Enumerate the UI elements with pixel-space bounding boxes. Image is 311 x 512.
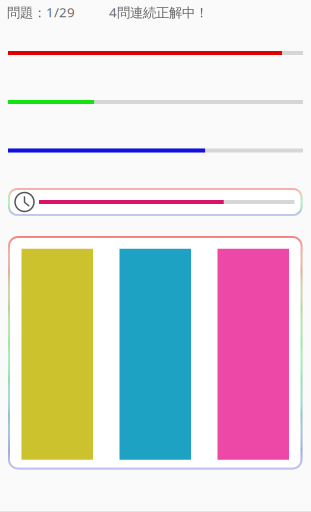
staticText: 問題：1/29 — [7, 3, 75, 21]
staticText: 4問連続正解中！ — [109, 3, 208, 21]
